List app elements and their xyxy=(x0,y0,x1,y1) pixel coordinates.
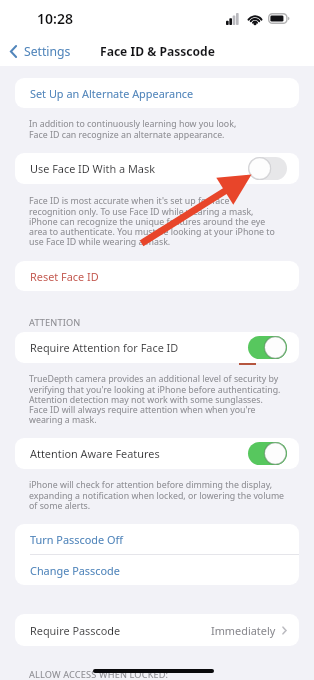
staticText: Face ID is most accurate when it's set u… xyxy=(29,195,275,248)
staticText: Use Face ID With a Mask xyxy=(30,161,155,176)
button[interactable]: Toggle off xyxy=(248,157,287,180)
button[interactable]: Back xyxy=(0,39,79,64)
button[interactable]: Toggle on xyxy=(248,442,287,465)
button[interactable]: Change Passcode xyxy=(15,555,299,585)
staticText: TrueDepth camera provides an additional … xyxy=(29,373,281,426)
staticText: Require Passcode xyxy=(30,623,121,638)
staticText: Attention Aware Features xyxy=(30,446,160,461)
button[interactable]: Require Attention for Face ID xyxy=(15,332,299,363)
staticText: ALLOW ACCESS WHEN LOCKED: xyxy=(29,668,169,680)
staticText: Face ID & Passcode xyxy=(100,43,215,59)
staticText: In addition to continuously learning how… xyxy=(29,118,237,141)
staticText: iPhone will check for attention before d… xyxy=(29,479,285,512)
staticText: Immediately xyxy=(211,623,276,638)
staticText: Settings xyxy=(24,43,71,60)
staticText: Change Passcode xyxy=(30,563,120,578)
staticText: Set Up an Alternate Appearance xyxy=(30,86,194,101)
staticText: 10:28 xyxy=(37,9,73,28)
button[interactable]: Use Face ID With a Mask xyxy=(15,153,299,184)
button[interactable]: Reset Face ID xyxy=(15,261,299,291)
button[interactable]: Turn Passcode Off xyxy=(15,524,299,554)
staticText: Require Attention for Face ID xyxy=(30,340,179,355)
staticText: ATTENTION xyxy=(29,316,81,329)
staticText: Turn Passcode Off xyxy=(30,532,123,547)
button[interactable]: Toggle on xyxy=(248,336,287,359)
staticText: Reset Face ID xyxy=(30,269,99,284)
button[interactable]: Attention Aware Features xyxy=(15,438,299,469)
button[interactable]: Set Up an Alternate Appearance xyxy=(15,78,299,108)
button[interactable]: Require Passcode xyxy=(15,614,299,646)
other: Back xyxy=(10,45,17,58)
